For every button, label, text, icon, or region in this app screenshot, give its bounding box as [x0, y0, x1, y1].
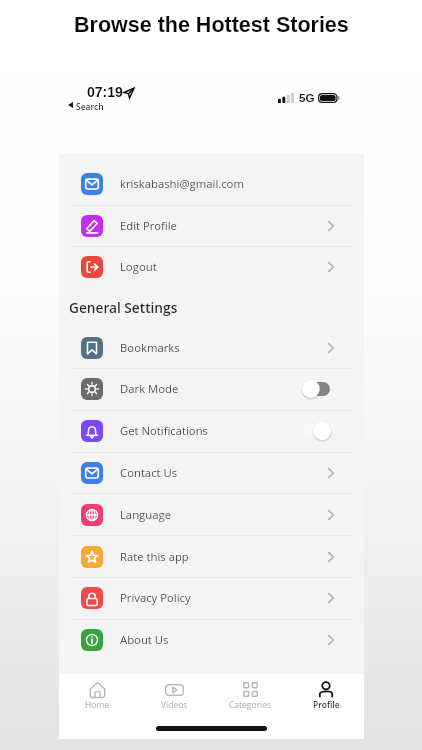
staticText: General Settings: [69, 298, 178, 317]
button[interactable]: Language: [59, 494, 364, 535]
button[interactable]: Contact Us: [59, 452, 364, 493]
button[interactable]: kriskabashi@gmail.com: [59, 163, 364, 204]
button[interactable]: Edit Profile: [59, 205, 364, 246]
staticText: Get Notifications: [120, 423, 209, 438]
staticText: Home: [85, 699, 110, 711]
button[interactable]: Videos: [136, 674, 212, 739]
button[interactable]: Categories: [212, 674, 288, 739]
staticText: Language: [120, 507, 172, 522]
button[interactable]: Bookmarks: [59, 327, 364, 368]
staticText: Privacy Policy: [120, 590, 191, 605]
button[interactable]: Logout: [59, 246, 364, 287]
staticText: Dark Mode: [120, 381, 179, 396]
button[interactable]: Toggle off: [303, 382, 330, 396]
staticText: 07:19: [87, 84, 123, 100]
staticText: Search: [76, 101, 104, 113]
button[interactable]: Rate this app: [59, 536, 364, 577]
staticText: Contact Us: [120, 465, 178, 480]
staticText: 5G: [299, 91, 315, 104]
button[interactable]: Privacy Policy: [59, 577, 364, 618]
staticText: kriskabashi@gmail.com: [120, 176, 244, 191]
staticText: Categories: [229, 699, 272, 711]
button[interactable]: Home: [59, 674, 136, 739]
staticText: Browse the Hottest Stories: [74, 13, 349, 37]
button[interactable]: Dark Mode: [59, 368, 364, 409]
staticText: About Us: [120, 632, 169, 647]
button[interactable]: Get Notifications: [59, 410, 364, 451]
staticText: Rate this app: [120, 549, 189, 564]
button[interactable]: Toggle on: [303, 424, 330, 438]
staticText: Logout: [120, 259, 157, 274]
staticText: Edit Profile: [120, 218, 177, 233]
staticText: Profile: [313, 699, 340, 711]
staticText: Videos: [161, 699, 188, 711]
staticText: Bookmarks: [120, 340, 180, 355]
button[interactable]: About Us: [59, 619, 364, 660]
button[interactable]: Profile: [288, 674, 364, 739]
